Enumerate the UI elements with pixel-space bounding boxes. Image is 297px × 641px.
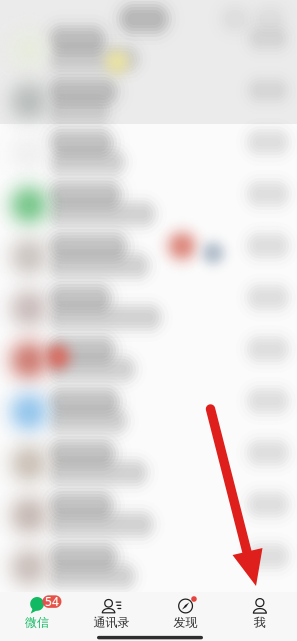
staticText: 微信 (25, 615, 49, 630)
button[interactable]: 我 (223, 592, 297, 641)
button[interactable]: 微信 (0, 592, 74, 641)
staticText: 通讯录 (93, 615, 129, 630)
staticText: 54 (45, 593, 59, 609)
staticText: 我 (254, 615, 266, 630)
button[interactable]: 通讯录 (74, 592, 148, 641)
button[interactable]: 发现 (148, 592, 223, 641)
staticText: 发现 (174, 615, 198, 630)
